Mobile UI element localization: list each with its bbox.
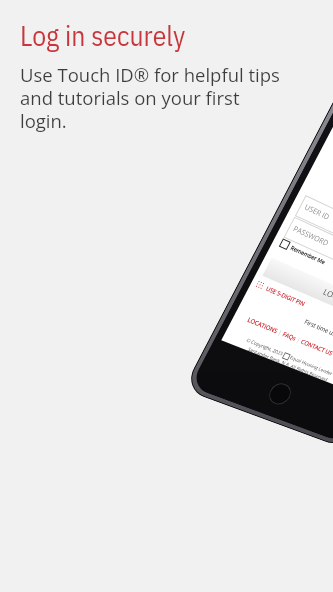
- staticText: Santander Bank, N.A. All Rights Reserved: [246, 346, 329, 383]
- staticText: |: [294, 335, 304, 344]
- button[interactable]: LOG IN: [262, 258, 333, 329]
- staticText: First time user? Register: [303, 317, 333, 350]
- button[interactable]: Home: [265, 380, 295, 407]
- button[interactable]: [295, 195, 333, 271]
- button[interactable]: Remember Me: [279, 238, 327, 266]
- button[interactable]: LOCATIONS: [246, 315, 279, 334]
- staticText: LOG IN: [321, 286, 333, 307]
- staticText: Equal Housing Lender · Member FDIC: [287, 354, 333, 388]
- staticText: © Copyright, 2023: [245, 337, 286, 358]
- staticText: PASSWORD: [292, 223, 331, 248]
- staticText: Log in securely: [20, 18, 186, 54]
- button[interactable]: [283, 217, 333, 292]
- staticText: |: [276, 327, 285, 337]
- button[interactable]: CONTACT US: [300, 337, 333, 357]
- staticText: Remember Me: [289, 244, 327, 266]
- staticText: USE 5-DIGIT PIN: [264, 285, 306, 308]
- other: PIN keypad: [254, 279, 266, 291]
- button[interactable]: PIN keypad: [254, 279, 307, 308]
- button[interactable]: FAQs: [282, 330, 298, 342]
- staticText: Use Touch ID® for helpful tips and tutor…: [20, 62, 280, 133]
- staticText: USER ID: [303, 202, 331, 222]
